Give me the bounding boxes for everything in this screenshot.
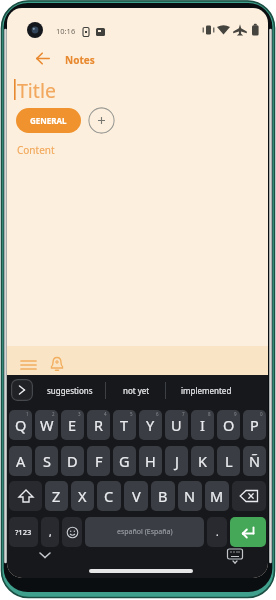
staticText: suggestions [47,385,93,396]
button[interactable]: K [191,446,214,476]
button[interactable]: ?123 [9,517,38,547]
staticText: K [198,451,207,471]
staticText: M [210,486,224,506]
button[interactable]: U [165,410,188,440]
staticText: , [49,525,52,539]
button[interactable]: A [9,446,32,476]
button[interactable] [47,354,67,376]
staticText: C [104,486,114,506]
button[interactable]: C [97,481,121,511]
button[interactable] [34,547,56,563]
staticText: H [145,451,156,471]
button[interactable]: Q [9,410,32,440]
staticText: J [175,451,179,471]
staticText: español (España) [117,527,173,537]
button[interactable] [224,546,246,564]
staticText: 7 [182,411,185,417]
button[interactable]: S [35,446,58,476]
button[interactable]: H [139,446,162,476]
button[interactable]: Z [45,481,68,511]
button[interactable]: G [113,446,136,476]
staticText: 5 [130,411,133,417]
staticText: . [216,525,219,539]
button[interactable] [35,51,51,66]
staticText: A [16,451,26,471]
staticText: N [184,486,196,506]
button[interactable] [11,379,33,401]
staticText: 1 [26,411,29,417]
staticText: I [200,415,205,435]
button[interactable]: implemented [169,375,243,406]
button[interactable]: V [124,481,148,511]
staticText: U [171,415,182,435]
button[interactable]: N [178,481,202,511]
staticText: Title [17,77,56,104]
staticText: L [225,451,233,471]
button[interactable]: Ñ [243,446,266,476]
staticText: T [120,415,129,435]
button[interactable]: E [61,410,84,440]
button[interactable] [232,481,266,511]
button[interactable]: R [87,410,110,440]
button[interactable]: suggestions [37,375,103,406]
button[interactable]: B [151,481,175,511]
button[interactable]: español (España) [85,517,204,547]
button[interactable] [9,481,42,511]
button[interactable]: GENERAL [16,108,81,133]
staticText: F [95,451,103,471]
button[interactable]: D [61,446,84,476]
staticText: 10:16 [56,26,76,36]
staticText: Content [17,143,55,157]
button[interactable]: . [207,517,227,547]
button[interactable]: J [165,446,188,476]
staticText: O [223,415,235,435]
button[interactable]: M [205,481,229,511]
staticText: 6 [156,411,159,417]
staticText: P [250,415,259,435]
staticText: 8 [208,411,211,417]
staticText: W [40,415,54,435]
staticText: Y [146,415,155,435]
button[interactable]: P [243,410,266,440]
staticText: 4 [104,411,107,417]
staticText: implemented [181,385,232,396]
staticText: D [67,451,78,471]
staticText: Ñ [249,451,261,471]
staticText: GENERAL [30,115,67,126]
staticText: 2 [52,411,55,417]
staticText: Q [15,415,27,435]
staticText: 9 [234,411,237,417]
staticText: ?123 [15,527,32,537]
button[interactable]: O [217,410,240,440]
button[interactable]: W [35,410,58,440]
button[interactable] [62,517,82,547]
staticText: B [158,486,168,506]
staticText: not yet [123,385,150,396]
button[interactable]: Y [139,410,162,440]
staticText: R [94,415,104,435]
button[interactable] [17,356,39,374]
staticText: V [132,486,141,506]
staticText: X [78,486,87,506]
staticText: 3 [78,411,81,417]
button[interactable] [88,107,115,134]
button[interactable]: , [41,517,59,547]
staticText: Notes [65,53,95,67]
button[interactable]: I [191,410,214,440]
staticText: S [43,451,51,471]
button[interactable]: L [217,446,240,476]
button[interactable] [230,517,266,547]
staticText: G [119,451,130,471]
button[interactable]: T [113,410,136,440]
button[interactable]: F [87,446,110,476]
button[interactable]: not yet [109,375,163,406]
staticText: 0 [260,411,263,417]
button[interactable]: X [71,481,94,511]
staticText: Z [52,486,61,506]
staticText: E [68,415,77,435]
